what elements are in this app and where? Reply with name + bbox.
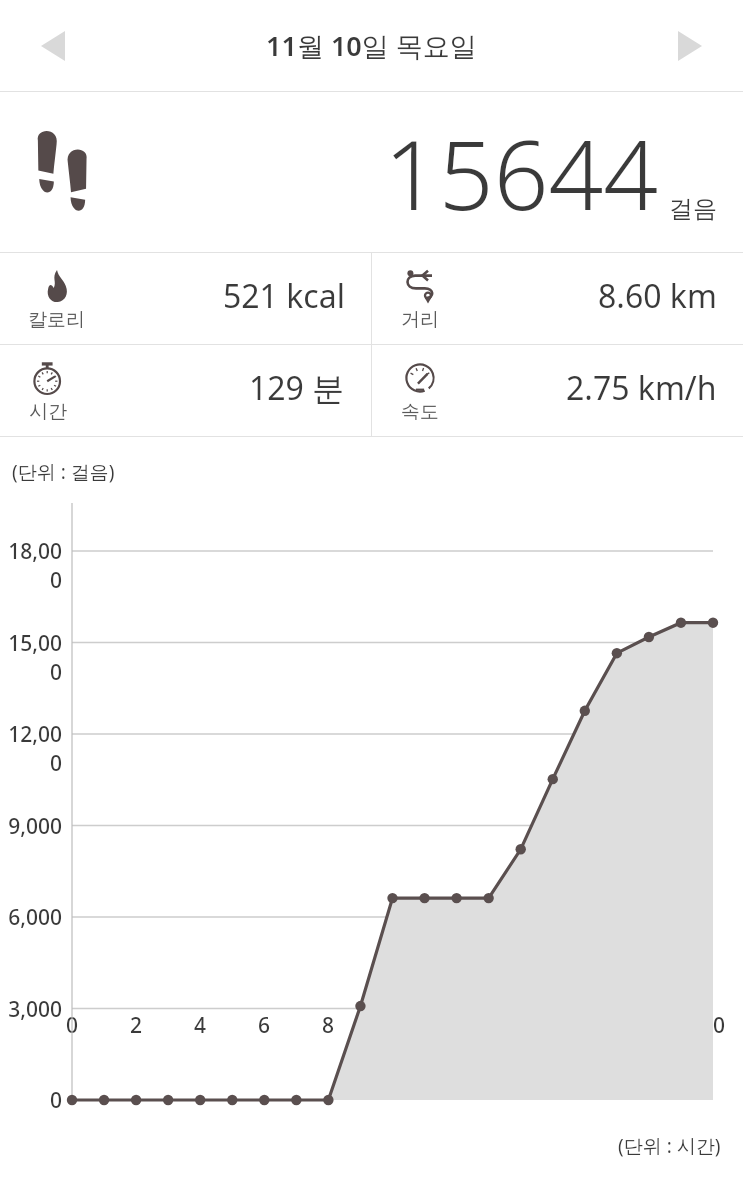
staticText: 시간: [29, 400, 67, 424]
staticText: 20: [693, 1011, 733, 1040]
staticText: 거리: [401, 308, 439, 332]
button[interactable]: Next day: [659, 15, 721, 77]
staticText: 속도: [401, 400, 439, 424]
button[interactable]: 거리: [372, 253, 743, 344]
staticText: 0: [0, 1086, 62, 1115]
staticText: 0: [52, 1011, 92, 1040]
staticText: 8: [308, 1011, 348, 1040]
staticText: (단위 : 시간): [618, 1133, 721, 1159]
staticText: 걸음: [669, 194, 717, 224]
staticText: 6: [244, 1011, 284, 1040]
staticText: 11월 10일 목요일: [266, 27, 477, 64]
staticText: 129 분: [249, 366, 345, 410]
staticText: (단위 : 걸음): [12, 459, 115, 485]
staticText: 8.60 km: [598, 274, 717, 318]
staticText: 12,000: [0, 720, 62, 778]
button[interactable]: 칼로리: [0, 253, 371, 344]
staticText: 9,000: [0, 812, 62, 841]
staticText: 15644: [384, 107, 659, 238]
button[interactable]: 15644: [0, 92, 743, 252]
staticText: 18,000: [0, 537, 62, 595]
staticText: 521 kcal: [223, 274, 345, 318]
button[interactable]: 속도: [372, 345, 743, 436]
staticText: 2: [116, 1011, 156, 1040]
button[interactable]: Previous day: [22, 15, 84, 77]
staticText: 15,000: [0, 629, 62, 687]
button[interactable]: 시간: [0, 345, 371, 436]
staticText: 2.75 km/h: [566, 366, 717, 410]
staticText: 6,000: [0, 903, 62, 932]
staticText: 3,000: [0, 995, 62, 1024]
staticText: 4: [180, 1011, 220, 1040]
staticText: 칼로리: [28, 308, 85, 332]
